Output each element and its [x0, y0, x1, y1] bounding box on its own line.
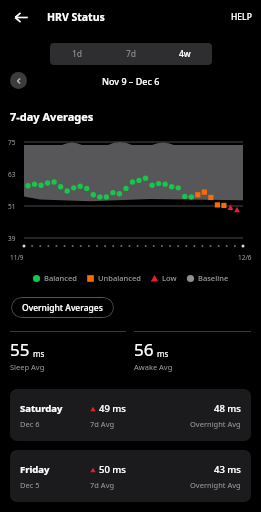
- staticText: 12/6: [238, 253, 252, 262]
- staticText: Balanced: [44, 273, 77, 283]
- button[interactable]: Saturday: [10, 389, 251, 441]
- staticText: Nov 9 – Dec 6: [102, 75, 160, 87]
- staticText: Overnight Averages: [22, 302, 103, 314]
- staticText: 49 ms: [99, 402, 126, 415]
- button[interactable]: Previous period: [10, 72, 27, 89]
- staticText: 75: [8, 138, 16, 147]
- staticText: Awake Avg: [134, 362, 173, 372]
- button[interactable]: 4w: [158, 43, 212, 65]
- staticText: Low: [162, 273, 177, 283]
- staticText: 1d: [72, 48, 83, 60]
- staticText: Dec 5: [20, 480, 40, 490]
- staticText: 7-day Averages: [10, 109, 94, 124]
- staticText: ms: [157, 348, 169, 359]
- button[interactable]: HELP: [228, 6, 255, 28]
- staticText: Sleep Avg: [10, 362, 45, 372]
- staticText: Baseline: [198, 273, 229, 283]
- staticText: 39: [8, 234, 16, 243]
- staticText: Overnight Avg: [190, 419, 241, 429]
- button[interactable]: 1d: [50, 43, 104, 65]
- button[interactable]: Back: [8, 4, 34, 30]
- staticText: 50 ms: [99, 463, 126, 476]
- staticText: HELP: [231, 11, 252, 23]
- staticText: 7d Avg: [90, 419, 115, 429]
- staticText: ms: [33, 348, 45, 359]
- staticText: Unbalanced: [98, 273, 141, 283]
- staticText: 7d Avg: [90, 480, 115, 490]
- staticText: HRV Status: [47, 10, 105, 24]
- staticText: 51: [8, 202, 16, 211]
- staticText: 11/9: [10, 253, 24, 262]
- staticText: Dec 6: [20, 419, 40, 429]
- button[interactable]: Friday: [10, 450, 251, 502]
- staticText: Friday: [20, 463, 50, 476]
- staticText: Saturday: [20, 402, 63, 415]
- staticText: 7d: [126, 48, 137, 60]
- staticText: Overnight Avg: [190, 480, 241, 490]
- staticText: 48 ms: [214, 402, 241, 415]
- button[interactable]: 7d: [104, 43, 158, 65]
- staticText: 55: [10, 338, 30, 361]
- button[interactable]: Overnight Averages: [11, 297, 114, 318]
- staticText: 56: [134, 338, 154, 361]
- staticText: 63: [8, 170, 16, 179]
- staticText: 4w: [179, 48, 191, 60]
- staticText: 43 ms: [214, 463, 241, 476]
